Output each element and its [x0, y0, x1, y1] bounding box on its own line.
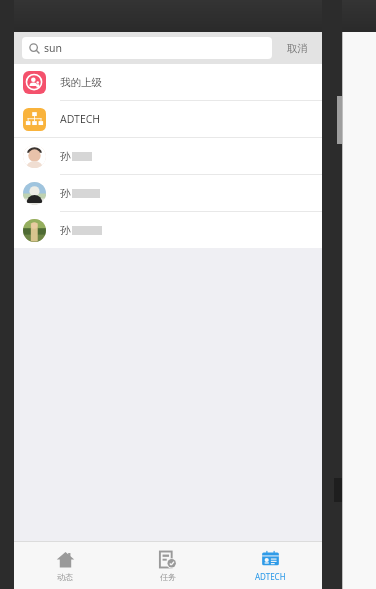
staticText: ADTECH — [60, 112, 101, 126]
staticText: 动态 — [57, 572, 73, 582]
button[interactable]: 动态 — [14, 542, 116, 589]
button[interactable]: 任务 — [116, 542, 219, 589]
button[interactable]: 孙 — [14, 212, 322, 248]
staticText: ADTECH — [255, 571, 286, 582]
staticText: 孙 — [60, 150, 71, 163]
button[interactable]: ADTECH — [219, 542, 322, 589]
staticText: 孙 — [60, 187, 71, 200]
staticText: 取消 — [287, 42, 308, 55]
button[interactable]: ADTECH — [14, 101, 322, 137]
staticText: 我的上级 — [60, 76, 102, 89]
button[interactable]: 孙 — [14, 175, 322, 211]
staticText: 孙 — [60, 224, 71, 237]
button[interactable]: 取消 — [272, 32, 322, 64]
staticText: sun — [44, 41, 63, 55]
button[interactable]: 孙 — [14, 138, 322, 174]
staticText: 任务 — [160, 572, 176, 582]
button[interactable]: 我的上级 — [14, 64, 322, 100]
button[interactable]: sun — [22, 37, 272, 59]
